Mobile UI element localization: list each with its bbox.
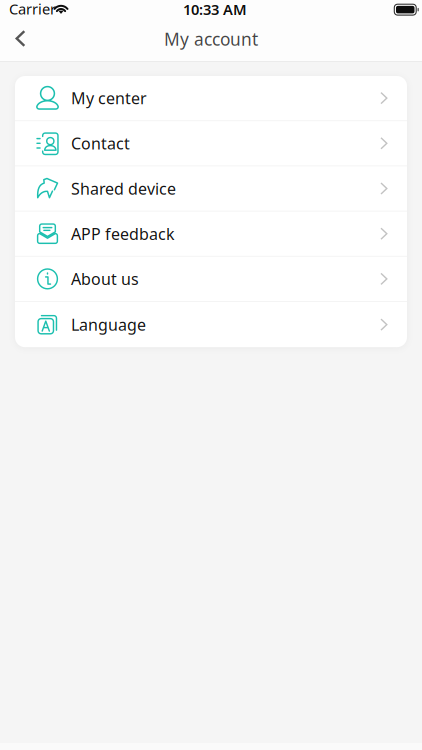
staticText: Language bbox=[71, 314, 146, 335]
button[interactable]: Contact bbox=[15, 121, 407, 166]
staticText: About us bbox=[71, 268, 139, 289]
button[interactable]: Back bbox=[3, 22, 37, 54]
staticText: My account bbox=[164, 27, 258, 50]
staticText: Shared device bbox=[71, 178, 176, 199]
button[interactable]: About us bbox=[15, 257, 407, 302]
staticText: Contact bbox=[71, 133, 130, 154]
staticText: 10:33 AM bbox=[183, 0, 247, 19]
staticText: My center bbox=[71, 87, 147, 109]
button[interactable]: APP feedback bbox=[15, 212, 407, 257]
staticText: Carrier bbox=[9, 0, 56, 18]
button[interactable]: Shared device bbox=[15, 166, 407, 212]
button[interactable]: Language bbox=[15, 302, 407, 347]
button[interactable]: My center bbox=[15, 76, 407, 121]
staticText: APP feedback bbox=[71, 223, 175, 244]
